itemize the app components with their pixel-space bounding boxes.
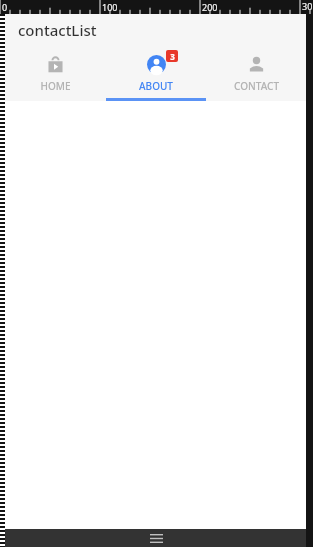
staticText: 300 xyxy=(302,0,313,14)
staticText: ABOUT xyxy=(139,79,173,93)
button[interactable]: 3 xyxy=(106,46,206,101)
staticText: 200 xyxy=(202,1,218,13)
button[interactable]: Recent apps xyxy=(142,529,170,547)
button[interactable]: HOME xyxy=(5,46,106,101)
staticText: 0 xyxy=(2,1,8,13)
staticText: HOME xyxy=(40,79,71,93)
staticText: 3 xyxy=(170,51,175,62)
staticText: contactList xyxy=(18,20,97,40)
staticText: 100 xyxy=(102,1,118,13)
button[interactable]: CONTACT xyxy=(206,46,306,101)
staticText: CONTACT xyxy=(234,79,279,93)
